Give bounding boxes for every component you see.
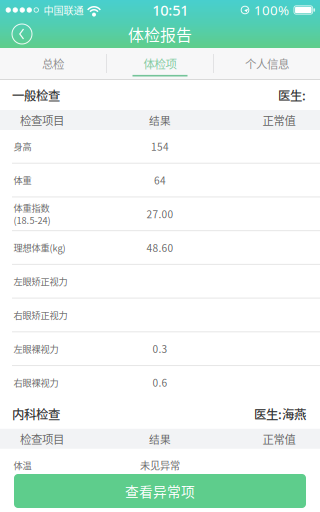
staticText: 检查项目 [20, 430, 64, 447]
staticText: 27.00 [146, 206, 173, 221]
staticText: 总检 [42, 55, 64, 72]
button[interactable]: 总检 [0, 48, 106, 79]
staticText: 体温 [13, 458, 31, 472]
staticText: 正常值 [262, 112, 295, 128]
staticText: 右眼裸视力 [13, 376, 58, 389]
button[interactable]: Back [7, 21, 37, 47]
staticText: 右眼矫正视力 [13, 308, 67, 322]
button[interactable]: 个人信息 [214, 48, 320, 79]
staticText: 正常值 [262, 431, 295, 447]
staticText: 医生: [278, 86, 306, 104]
staticText: 医生:海燕 [254, 405, 306, 423]
staticText: 中国联通 [43, 3, 83, 17]
staticText: 一般检查 [12, 86, 60, 104]
staticText: 左眼矫正视力 [13, 275, 67, 288]
staticText: 64 [154, 173, 166, 187]
button[interactable]: 体检项 [107, 48, 213, 79]
staticText: 身高 [13, 140, 31, 153]
staticText: 体重指数 [13, 201, 49, 214]
staticText: 未见异常 [140, 458, 180, 472]
staticText: 0.6 [152, 375, 167, 390]
staticText: 结果 [149, 112, 171, 128]
staticText: 0.3 [152, 341, 167, 356]
button[interactable]: 查看异常项 [14, 474, 306, 508]
staticText: 100% [254, 1, 289, 19]
staticText: 结果 [149, 431, 171, 446]
staticText: 左眼裸视力 [13, 342, 58, 355]
staticText: 检查项目 [20, 112, 64, 128]
staticText: 体重 [13, 173, 31, 187]
staticText: 体检项 [143, 55, 176, 72]
staticText: 内科检查 [12, 405, 60, 423]
staticText: 48.60 [146, 240, 173, 255]
staticText: 个人信息 [245, 55, 289, 72]
staticText: 154 [151, 139, 169, 154]
staticText: (18.5-24) [13, 213, 50, 227]
staticText: 10:51 [152, 0, 188, 20]
staticText: 查看异常项 [125, 481, 195, 501]
staticText: 体检报告 [128, 22, 192, 46]
staticText: 120/80 [143, 491, 177, 506]
staticText: 理想体重(kg) [13, 241, 65, 254]
staticText: 血压 [13, 492, 31, 505]
